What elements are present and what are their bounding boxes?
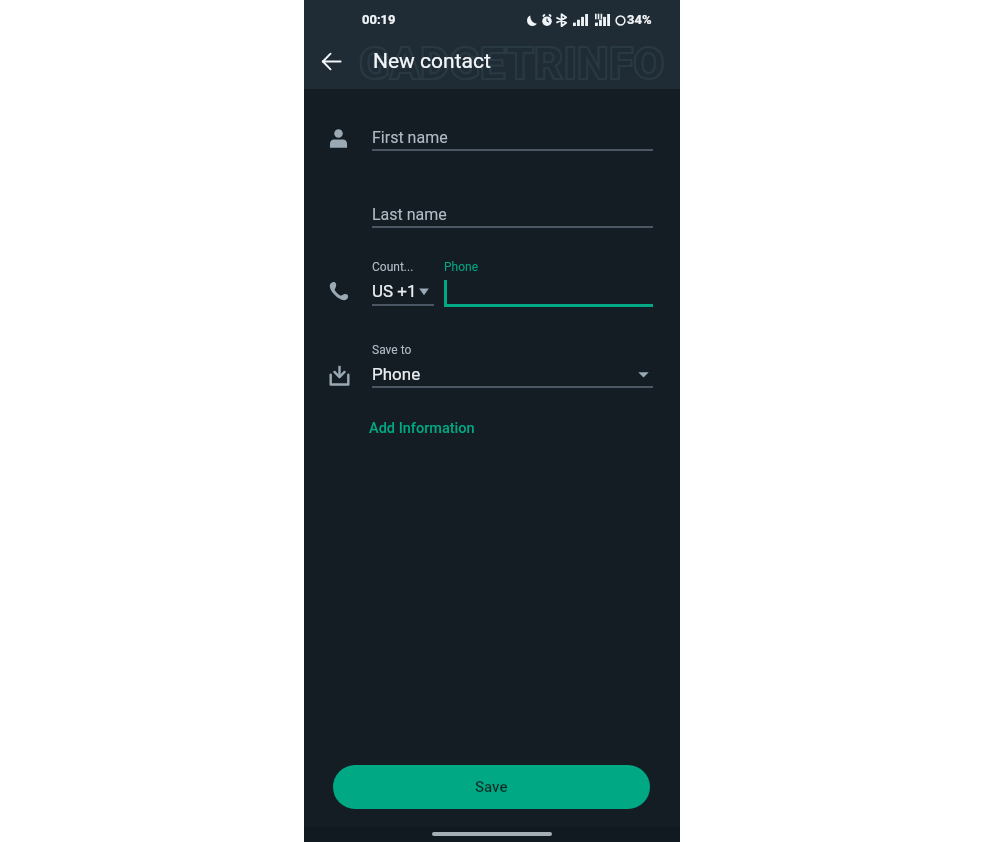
staticText: Count...	[372, 260, 414, 274]
button[interactable]: Add Information	[360, 411, 483, 445]
staticText: First name	[372, 128, 448, 147]
other: Name	[329, 129, 348, 148]
button[interactable]: Count...	[372, 260, 434, 309]
staticText: US +1	[372, 281, 417, 301]
button[interactable]: Phone	[444, 260, 653, 309]
button[interactable]: Save	[333, 765, 650, 809]
other: Save to account	[329, 365, 350, 386]
staticText: Add Information	[369, 420, 475, 437]
staticText: Last name	[372, 205, 447, 224]
staticText: Phone	[444, 260, 479, 274]
staticText: 34%	[627, 12, 652, 27]
button[interactable]: Last name	[372, 205, 653, 230]
button[interactable]: Save to	[372, 343, 653, 391]
staticText: GADGETRINFO	[359, 37, 665, 90]
staticText: 00:19	[362, 12, 396, 27]
button[interactable]: Back	[307, 37, 355, 85]
staticText: Save	[475, 778, 508, 796]
button[interactable]: First name	[372, 128, 653, 153]
staticText: Save to	[372, 343, 412, 357]
staticText: Phone	[372, 364, 421, 384]
other: Phone number	[329, 281, 349, 301]
staticText: New contact	[373, 49, 491, 74]
